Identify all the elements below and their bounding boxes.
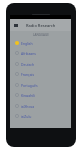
button[interactable]: Português (10, 80, 71, 90)
button[interactable]: isiZulu (10, 111, 71, 121)
button[interactable]: Deutsch (10, 59, 71, 69)
staticText: Français (21, 72, 35, 77)
staticText: Radio Research (26, 23, 56, 28)
staticText: Deutsch (21, 62, 35, 67)
staticText: isiXhosa (21, 104, 35, 109)
button[interactable]: Kiswahili (10, 90, 71, 100)
staticText: isiZulu (21, 114, 32, 119)
staticText: Kiswahili (21, 93, 35, 98)
button[interactable]: Français (10, 69, 71, 79)
button[interactable]: Afrikaans (10, 48, 71, 58)
button[interactable]: English (10, 38, 71, 48)
button[interactable]: isiXhosa (10, 101, 71, 111)
staticText: Português (21, 83, 38, 88)
staticText: LANGUAGE (33, 33, 49, 37)
staticText: English (21, 41, 33, 46)
staticText: Afrikaans (21, 51, 36, 56)
button[interactable]: Open navigation menu (10, 19, 22, 31)
